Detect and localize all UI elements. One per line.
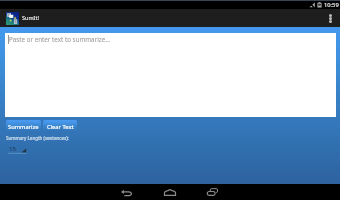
button[interactable]: More options [322, 9, 340, 27]
staticText: Paste or enter text to summarize... [9, 35, 111, 44]
button[interactable]: Summarize [6, 120, 41, 133]
staticText: SumIt! [22, 14, 39, 21]
staticText: Clear Text [47, 123, 74, 131]
button[interactable]: Summary length [6, 143, 27, 155]
staticText: Summarize [8, 123, 39, 131]
button[interactable]: Back [110, 184, 142, 200]
staticText: 10:59 [324, 1, 339, 9]
button[interactable]: Home [154, 184, 186, 200]
staticText: Summary Length (sentences): [6, 135, 69, 141]
button[interactable]: Recent apps [196, 184, 228, 200]
button[interactable]: Clear Text [43, 120, 77, 133]
button[interactable]: Paste or enter text to summarize... [5, 33, 336, 117]
staticText: 15 [9, 145, 16, 153]
